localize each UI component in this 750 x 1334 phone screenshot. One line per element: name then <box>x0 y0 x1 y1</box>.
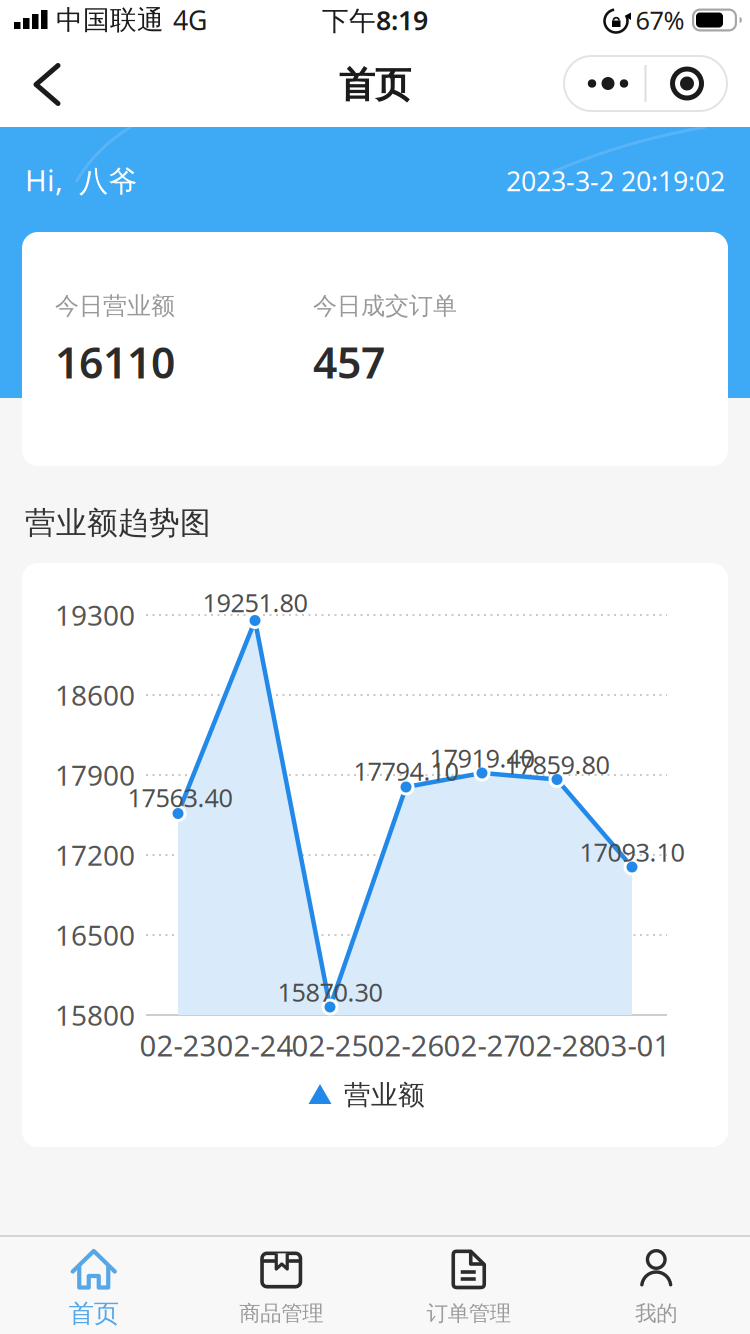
button[interactable]: 商品管理 <box>187 1242 375 1334</box>
staticText: 03-01 <box>593 1025 670 1064</box>
button[interactable]: 订单管理 <box>375 1242 562 1334</box>
button[interactable]: 返回 <box>9 44 79 124</box>
staticText: 17093.10 <box>579 835 684 869</box>
staticText: 15870.30 <box>277 975 382 1009</box>
staticText: 16500 <box>55 916 135 954</box>
staticText: 下午8:19 <box>322 2 428 38</box>
staticText: 首页 <box>69 1298 119 1329</box>
staticText: 02-25 <box>291 1025 368 1064</box>
staticText: 17563.40 <box>127 781 232 814</box>
staticText: 商品管理 <box>239 1300 323 1327</box>
staticText: 4G <box>173 2 207 38</box>
staticText: 营业额 <box>344 1079 425 1111</box>
staticText: 02-28 <box>518 1025 595 1064</box>
staticText: 17859.80 <box>504 748 609 781</box>
staticText: 16110 <box>55 334 175 390</box>
staticText: 营业额趋势图 <box>25 504 211 542</box>
staticText: 02-26 <box>367 1025 444 1064</box>
staticText: 19251.80 <box>202 586 307 619</box>
staticText: 2023-3-2 20:19:02 <box>506 163 725 199</box>
staticText: 02-27 <box>443 1025 520 1064</box>
staticText: 订单管理 <box>427 1300 511 1327</box>
staticText: 17919.40 <box>429 741 534 775</box>
staticText: 67% <box>635 3 684 37</box>
staticText: 17200 <box>55 836 135 874</box>
staticText: 中国联通 <box>56 4 164 36</box>
button[interactable]: 我的 <box>562 1242 750 1334</box>
staticText: 19300 <box>55 596 135 634</box>
staticText: 我的 <box>635 1300 677 1327</box>
staticText: 今日营业额 <box>55 291 175 321</box>
staticText: 457 <box>313 334 385 390</box>
staticText: 17794.10 <box>353 754 458 788</box>
staticText: 02-24 <box>216 1025 293 1064</box>
staticText: 18600 <box>55 676 135 714</box>
button[interactable]: 关闭小程序 <box>646 55 728 112</box>
staticText: Hi, 八爷 <box>25 160 137 199</box>
staticText: 17900 <box>55 756 135 794</box>
staticText: 今日成交订单 <box>313 291 457 321</box>
staticText: 首页 <box>339 63 411 107</box>
staticText: 15800 <box>55 996 135 1034</box>
staticText: 02-23 <box>139 1025 216 1064</box>
button[interactable]: 首页 <box>0 1242 187 1334</box>
button[interactable]: 更多 <box>563 55 645 112</box>
